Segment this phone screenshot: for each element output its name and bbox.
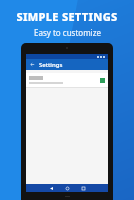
button[interactable]: Home <box>59 184 75 192</box>
staticText: Settings <box>39 61 63 69</box>
button[interactable]: Recent apps <box>75 184 91 192</box>
staticText: SIMPLE SETTINGS <box>16 9 118 24</box>
button[interactable]: Back <box>26 59 108 70</box>
button[interactable]: Back <box>43 184 59 192</box>
button[interactable]: Back <box>29 61 36 68</box>
staticText: Easy to customize <box>34 27 101 38</box>
button[interactable]: Item icon <box>26 73 108 87</box>
